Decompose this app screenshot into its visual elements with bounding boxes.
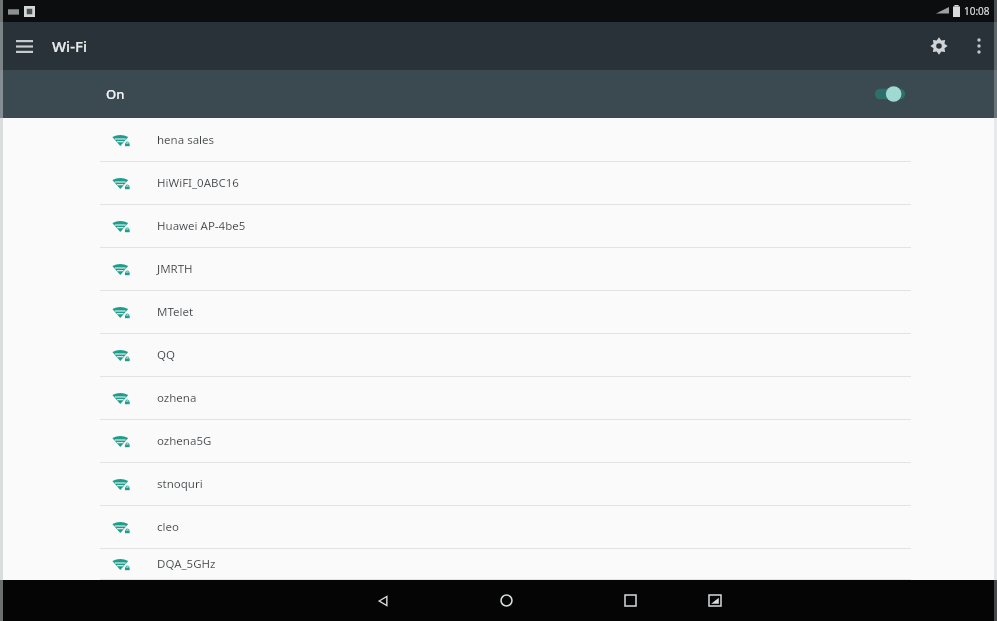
button[interactable]: ozhena5G: [0, 420, 997, 463]
button[interactable]: JMRTH: [0, 248, 997, 291]
staticText: ozhena5G: [157, 433, 212, 449]
button[interactable]: Advanced settings: [917, 24, 961, 68]
staticText: 10:08: [964, 4, 990, 18]
staticText: DQA_5GHz: [157, 556, 216, 572]
staticText: Huawei AP-4be5: [157, 218, 246, 234]
button[interactable]: Navigation menu: [0, 22, 48, 70]
button[interactable]: stnoquri: [0, 463, 997, 506]
staticText: HiWiFI_0ABC16: [157, 175, 239, 191]
button[interactable]: Huawei AP-4be5: [0, 205, 997, 248]
staticText: hena sales: [157, 132, 215, 148]
staticText: ozhena: [157, 390, 197, 406]
button[interactable]: Wi-Fi toggle, on: [871, 81, 909, 107]
staticText: MTelet: [157, 304, 194, 320]
button[interactable]: HiWiFI_0ABC16: [0, 162, 997, 205]
button[interactable]: Back: [362, 580, 404, 621]
button[interactable]: On: [0, 70, 997, 118]
button[interactable]: ozhena: [0, 377, 997, 420]
button[interactable]: cleo: [0, 506, 997, 549]
button[interactable]: DQA_5GHz: [0, 549, 997, 580]
staticText: On: [106, 85, 125, 103]
button[interactable]: More options: [961, 28, 997, 64]
staticText: stnoquri: [157, 476, 203, 492]
button[interactable]: QQ: [0, 334, 997, 377]
staticText: JMRTH: [157, 261, 193, 277]
staticText: Wi-Fi: [52, 36, 87, 56]
staticText: QQ: [157, 347, 175, 363]
button[interactable]: Screenshot: [694, 580, 736, 621]
button[interactable]: Home: [485, 580, 527, 621]
button[interactable]: MTelet: [0, 291, 997, 334]
button[interactable]: Recent apps: [609, 580, 651, 621]
button[interactable]: hena sales: [0, 119, 997, 162]
staticText: cleo: [157, 519, 179, 535]
